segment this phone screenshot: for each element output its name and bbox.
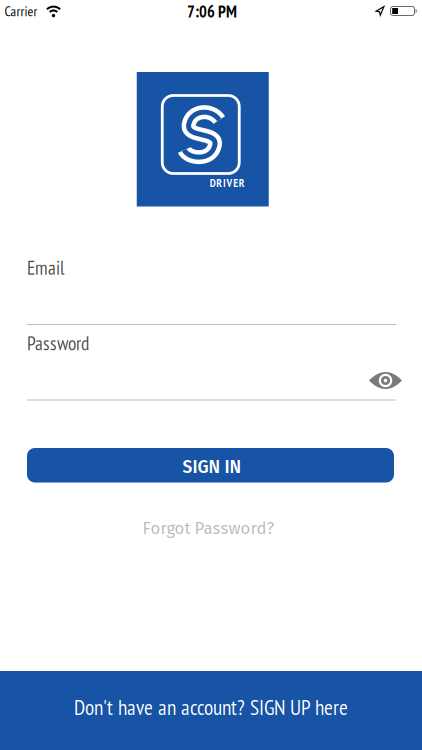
staticText: Email: [27, 255, 65, 280]
staticText: Password: [27, 330, 89, 355]
button[interactable]: SIGN IN: [27, 448, 394, 482]
staticText: SIGN IN: [182, 457, 241, 478]
staticText: 7:06 PM: [187, 1, 237, 22]
button[interactable]: Forgot Password?: [142, 518, 274, 538]
button[interactable]: [27, 255, 396, 325]
staticText: DRIVER: [210, 175, 245, 190]
button[interactable]: Don't have an account? SIGN UP here: [0, 671, 422, 750]
staticText: Don't have an account? SIGN UP here: [74, 693, 348, 721]
staticText: Forgot Password?: [142, 518, 274, 538]
button[interactable]: [27, 331, 357, 401]
button[interactable]: [369, 370, 402, 390]
staticText: Carrier: [4, 2, 37, 20]
